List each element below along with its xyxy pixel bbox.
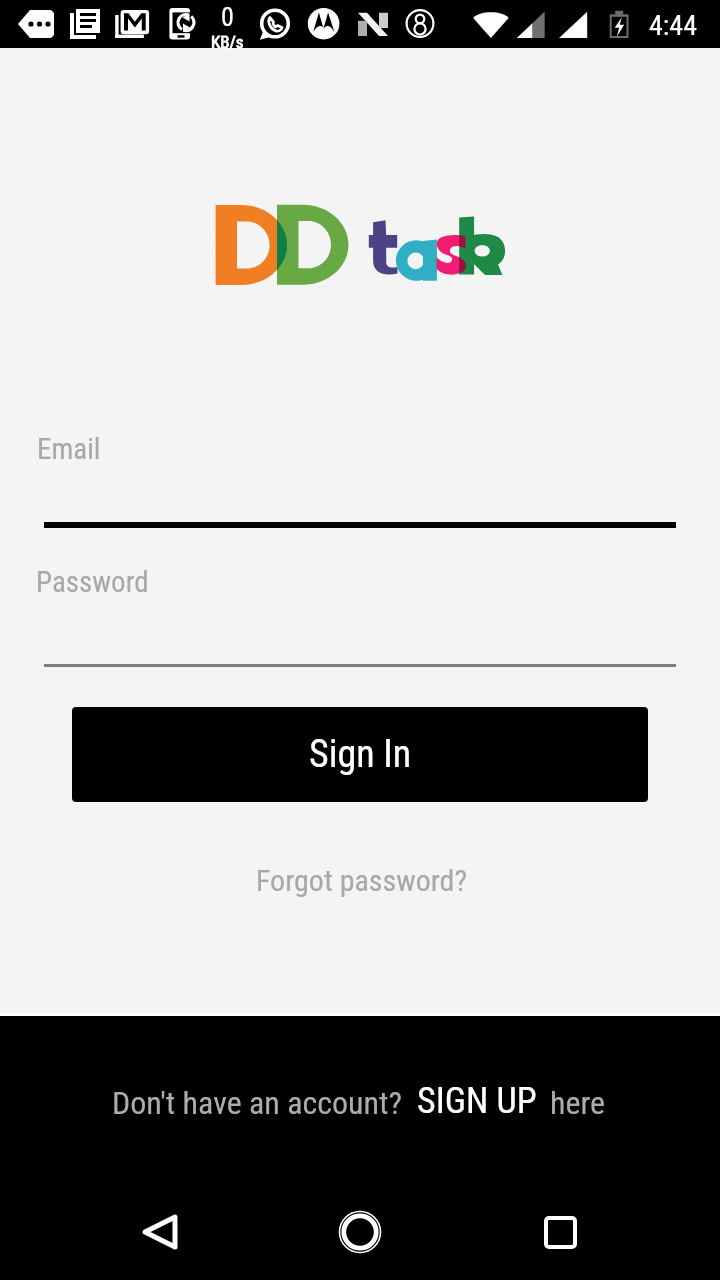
staticText: SIGN UP <box>417 1080 537 1122</box>
staticText: 4:44 <box>649 9 698 42</box>
button[interactable]: Recents <box>520 1192 600 1272</box>
staticText: Sign In <box>309 732 412 777</box>
button[interactable]: Back <box>120 1192 200 1272</box>
staticText: 0 <box>221 2 234 32</box>
staticText: here <box>550 1084 605 1122</box>
staticText: Don't have an account? <box>112 1084 403 1122</box>
staticText: KB/s <box>211 32 244 50</box>
staticText: Password <box>36 565 149 599</box>
button[interactable]: Sign In <box>72 707 648 802</box>
button[interactable]: Forgot password? <box>256 863 468 898</box>
button[interactable]: SIGN UP <box>417 1080 537 1122</box>
button[interactable]: Home <box>320 1192 400 1272</box>
staticText: Forgot password? <box>256 863 468 898</box>
staticText: Email <box>37 432 101 466</box>
